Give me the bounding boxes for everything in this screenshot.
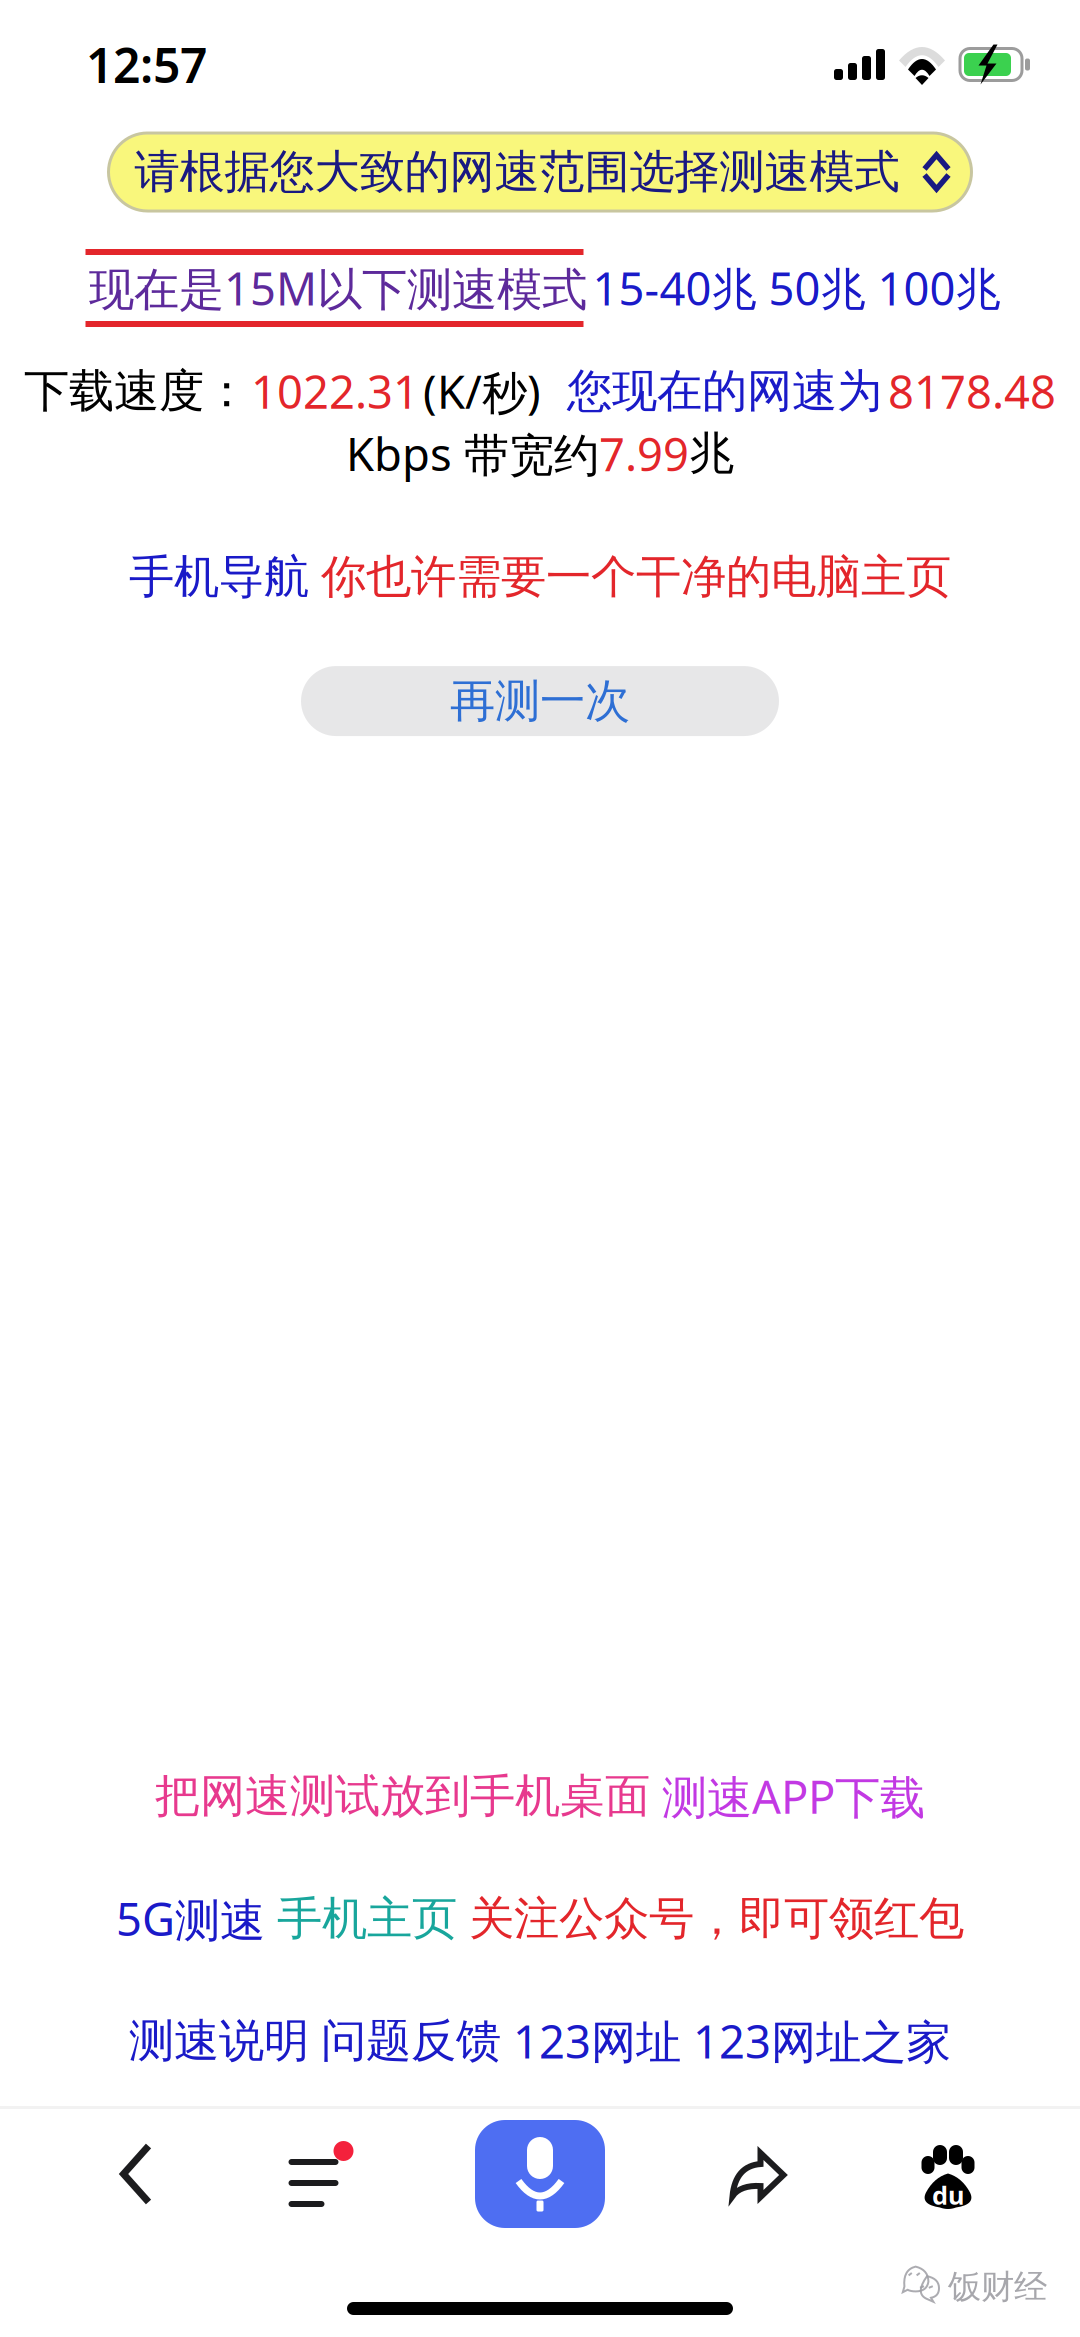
staticText: 把网速测试放到手机桌面	[155, 1768, 650, 1824]
button[interactable]: Share	[678, 2104, 838, 2244]
button[interactable]: 你也许需要一个干净的电脑主页	[321, 549, 951, 605]
button[interactable]: 测速说明	[129, 2013, 309, 2069]
button[interactable]: 5G测速	[116, 1888, 265, 1949]
staticText: Kbps 带宽约	[346, 423, 599, 484]
staticText: 兆	[689, 426, 734, 481]
staticText: 您现在的网速为	[567, 363, 882, 419]
staticText: 5G测速	[116, 1888, 265, 1949]
staticText: 12:57	[86, 33, 207, 96]
button[interactable]: 请根据您大致的网速范围选择测速模式	[108, 133, 971, 211]
staticText: 123网址	[513, 2011, 681, 2071]
button[interactable]: Voice search	[452, 2104, 628, 2244]
button[interactable]: 再测一次	[301, 666, 779, 736]
button[interactable]: Back	[56, 2104, 216, 2244]
button[interactable]: 把网速测试放到手机桌面	[155, 1768, 650, 1824]
button[interactable]: 123网址之家	[693, 2011, 951, 2071]
button[interactable]: 手机主页	[277, 1891, 457, 1946]
staticText: 你也许需要一个干净的电脑主页	[321, 549, 951, 605]
staticText: 饭财经	[948, 2266, 1047, 2307]
staticText: 手机主页	[277, 1891, 457, 1946]
staticText: 1022.31	[251, 361, 419, 421]
staticText: 请根据您大致的网速范围选择测速模式	[134, 144, 899, 200]
button[interactable]: 测速APP下载	[662, 1766, 925, 1826]
staticText: 现在是15M以下测速模式	[89, 258, 587, 318]
staticText: du	[932, 2178, 964, 2212]
button[interactable]: Menu	[241, 2104, 401, 2244]
staticText: 8178.48	[888, 361, 1056, 421]
staticText: 123网址之家	[693, 2011, 951, 2071]
button[interactable]: 关注公众号，即可领红包	[469, 1891, 964, 1946]
staticText: 再测一次	[450, 673, 630, 729]
staticText: 15-40兆 50兆 100兆	[592, 258, 1000, 318]
button[interactable]: 123网址	[513, 2011, 681, 2071]
button[interactable]: 问题反馈	[321, 2013, 501, 2069]
button[interactable]: 手机导航	[129, 549, 309, 605]
staticText: 问题反馈	[321, 2013, 501, 2069]
staticText: 手机导航	[129, 549, 309, 605]
staticText: (K/秒)	[423, 361, 541, 421]
staticText: 下载速度：	[24, 363, 249, 419]
staticText: 测速APP下载	[662, 1766, 925, 1826]
button[interactable]: Baidu home	[868, 2104, 1028, 2244]
staticText: 7.99	[599, 424, 689, 484]
staticText: 测速说明	[129, 2013, 309, 2069]
staticText: 关注公众号，即可领红包	[469, 1891, 964, 1946]
